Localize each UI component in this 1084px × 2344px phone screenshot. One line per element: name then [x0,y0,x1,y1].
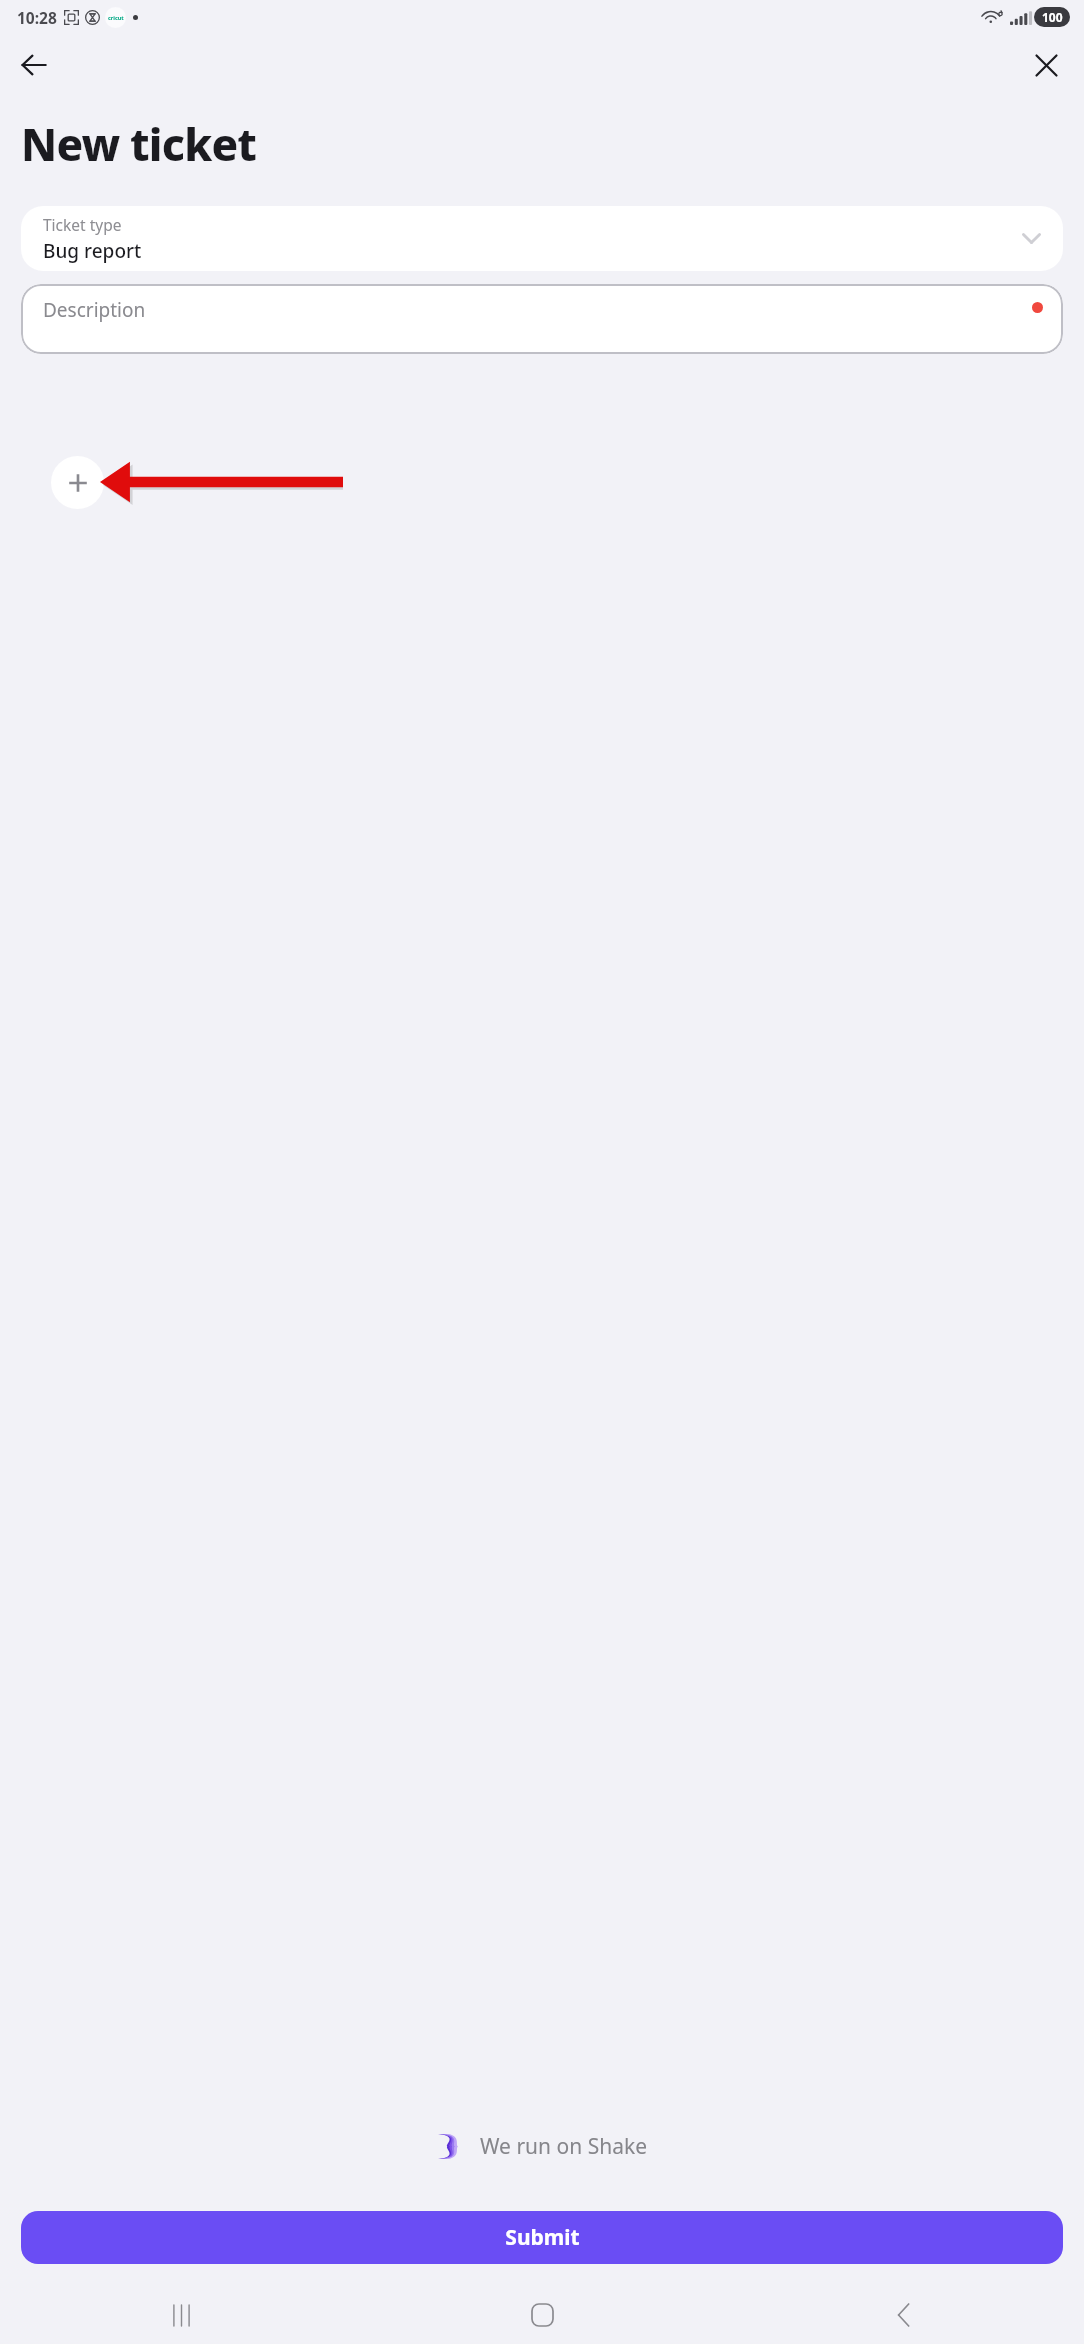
button[interactable]: Submit [21,2211,1063,2264]
button[interactable]: Recents [0,2286,362,2344]
button[interactable]: Home [362,2286,723,2344]
button[interactable]: Close [1020,39,1072,91]
staticText: Description [43,297,146,323]
staticText: Bug report [43,238,142,264]
button[interactable]: Back [8,39,60,91]
button[interactable]: Description [21,284,1063,354]
button[interactable]: Ticket type [21,206,1063,271]
button[interactable]: Add attachment [51,456,104,509]
staticText: Submit [505,2223,580,2252]
staticText: New ticket [21,114,257,174]
staticText: cricut [108,14,124,21]
staticText: Ticket type [43,214,122,235]
button[interactable]: Back [723,2286,1084,2344]
staticText: We run on Shake [480,2132,647,2161]
staticText: 10:28 [17,7,57,28]
staticText: 100 [1042,9,1063,25]
